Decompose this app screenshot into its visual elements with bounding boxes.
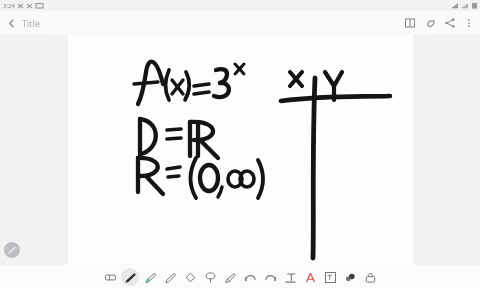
staticText: 3:24 xyxy=(3,2,15,10)
button[interactable]: Back xyxy=(0,12,22,34)
button[interactable]: Color xyxy=(341,268,359,286)
staticText: Title xyxy=(22,17,40,29)
button[interactable]: Erase xyxy=(221,268,239,286)
button[interactable]: Lock xyxy=(361,268,379,286)
button[interactable]: Undo xyxy=(241,268,259,286)
button[interactable]: Page view xyxy=(400,13,420,33)
button[interactable]: Select xyxy=(201,268,219,286)
button[interactable]: Insert xyxy=(281,268,299,286)
button[interactable]: Marker xyxy=(161,268,179,286)
button[interactable]: Eraser xyxy=(101,268,119,286)
button[interactable]: Text box xyxy=(321,268,339,286)
button[interactable]: Redo xyxy=(261,268,279,286)
button[interactable]: Share xyxy=(440,13,460,33)
button[interactable]: More options xyxy=(460,14,478,32)
button[interactable]: Text style xyxy=(301,268,319,286)
button[interactable]: Highlighter xyxy=(141,268,159,286)
button[interactable]: Attach xyxy=(420,13,440,33)
button[interactable]: Shapes xyxy=(181,268,199,286)
button[interactable]: Edit xyxy=(4,242,20,258)
button[interactable]: Pen xyxy=(121,268,139,286)
